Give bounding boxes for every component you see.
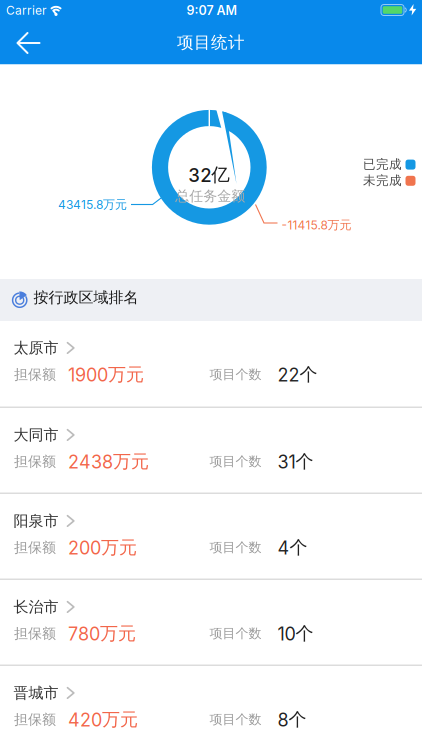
staticText: 未完成 — [363, 173, 402, 188]
button[interactable]: 太原市 — [0, 321, 422, 406]
staticText: 大同市 — [13, 426, 58, 444]
staticText: 项目个数 — [209, 366, 261, 383]
button[interactable]: 长治市 — [0, 580, 422, 664]
staticText: Carrier — [6, 3, 47, 18]
staticText: 200万元 — [68, 536, 137, 559]
staticText: 项目个数 — [209, 711, 261, 728]
staticText: 10个 — [277, 622, 313, 645]
staticText: 阳泉市 — [13, 512, 58, 530]
staticText: 项目个数 — [209, 453, 261, 470]
staticText: 4个 — [277, 536, 307, 559]
staticText: 8个 — [277, 708, 306, 731]
staticText: 32亿 — [188, 163, 230, 186]
staticText: -11415.8万元 — [281, 217, 351, 232]
staticText: 22个 — [277, 363, 317, 386]
staticText: 31个 — [277, 450, 313, 473]
staticText: 担保额 — [14, 711, 56, 728]
staticText: 按行政区域排名 — [33, 288, 138, 307]
staticText: 长治市 — [13, 598, 58, 616]
button[interactable]: 大同市 — [0, 408, 422, 492]
staticText: 担保额 — [14, 366, 56, 383]
staticText: 已完成 — [363, 156, 402, 172]
button[interactable]: 晋城市 — [0, 666, 422, 750]
staticText: 780万元 — [68, 622, 136, 645]
staticText: 担保额 — [14, 539, 56, 556]
staticText: 总任务金额 — [175, 187, 245, 205]
staticText: 太原市 — [13, 339, 58, 357]
button[interactable]: Back — [8, 25, 52, 59]
staticText: 项目个数 — [209, 625, 261, 642]
staticText: 项目统计 — [177, 32, 245, 53]
staticText: 担保额 — [14, 453, 56, 470]
staticText: 43415.8万元 — [58, 197, 127, 212]
staticText: 担保额 — [14, 625, 56, 642]
staticText: 1900万元 — [68, 363, 144, 386]
staticText: 项目个数 — [209, 539, 261, 556]
staticText: 420万元 — [68, 708, 138, 731]
staticText: 9:07 AM — [186, 3, 237, 18]
staticText: 2438万元 — [68, 450, 149, 473]
button[interactable]: 阳泉市 — [0, 494, 422, 578]
staticText: 晋城市 — [13, 684, 58, 702]
